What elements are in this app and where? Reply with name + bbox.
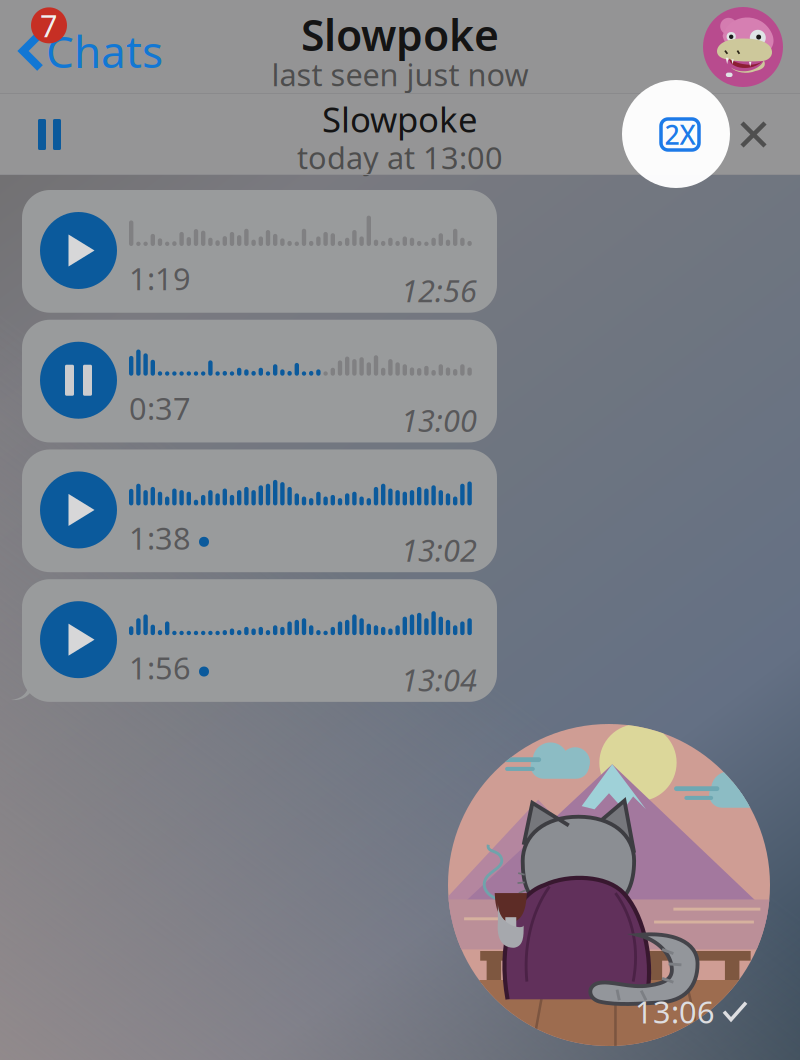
button[interactable]: Profile [703, 7, 783, 87]
staticText: 1:56 [129, 647, 191, 688]
staticText: 13:04 [401, 659, 477, 700]
button[interactable]: 1:38 [22, 449, 497, 572]
staticText: 1:19 [129, 258, 191, 299]
staticText: Chats [46, 22, 163, 80]
staticText: 13:00 [401, 400, 477, 440]
staticText: Slowpoke [301, 6, 499, 63]
button[interactable]: Chats [0, 6, 163, 88]
staticText: Slowpoke [322, 96, 478, 142]
button[interactable]: 1:19 [22, 190, 497, 313]
staticText: 2X [664, 117, 695, 152]
button[interactable]: Close [728, 109, 779, 160]
button[interactable]: Pause [0, 107, 61, 162]
staticText: 1:38 [129, 517, 191, 558]
staticText: 12:56 [401, 270, 477, 311]
staticText: today at 13:00 [297, 137, 503, 178]
staticText: 0:37 [129, 388, 191, 428]
button[interactable]: 0:37 [22, 320, 497, 442]
button[interactable]: 1:56 [22, 579, 497, 702]
button[interactable]: 2X [661, 119, 699, 150]
staticText: 13:02 [401, 529, 477, 570]
staticText: last seen just now [271, 54, 528, 95]
staticText: 7 [40, 5, 58, 46]
staticText: 13:06 [635, 991, 715, 1032]
